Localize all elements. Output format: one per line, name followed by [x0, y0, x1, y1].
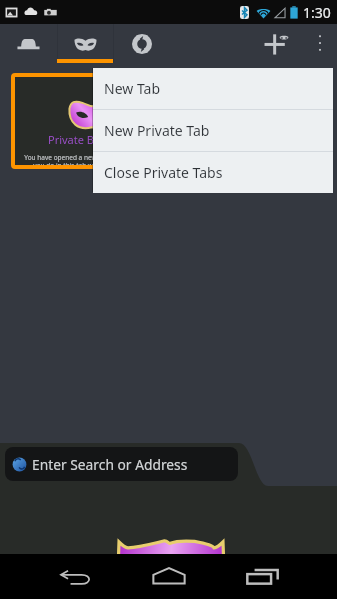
button[interactable]: New Tab [93, 68, 333, 109]
staticText: New Tab [104, 79, 161, 98]
button[interactable]: Enter Search or Address [5, 447, 238, 481]
button[interactable]: Close Private Tabs [93, 152, 333, 193]
staticText: New Private Tab [104, 121, 210, 140]
button[interactable]: Private Browsing [11, 73, 173, 169]
button[interactable]: More options [303, 24, 337, 63]
staticText: You have opened a new private tab. Nothi… [24, 153, 160, 165]
staticText: Close Private Tabs [104, 163, 223, 182]
button[interactable]: Back [28, 554, 122, 599]
button[interactable]: Normal tabs [0, 24, 57, 63]
staticText: Enter Search or Address [32, 455, 188, 474]
button[interactable]: New Private Tab [93, 110, 333, 151]
staticText: Private Browsing [48, 132, 136, 147]
button[interactable]: Synced tabs [114, 24, 169, 63]
button[interactable]: New private tab [251, 24, 303, 63]
staticText: 1:30 [303, 3, 331, 22]
button[interactable]: Private tabs [58, 24, 113, 63]
button[interactable]: Recent apps [215, 554, 309, 599]
button[interactable]: Home [122, 554, 215, 599]
